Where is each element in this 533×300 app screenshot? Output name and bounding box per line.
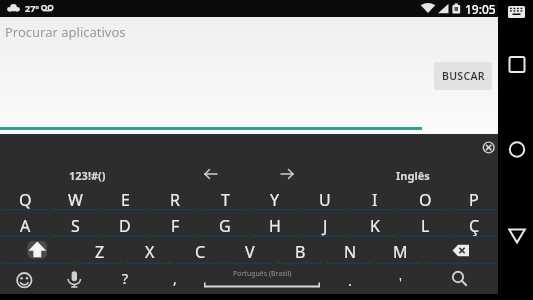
staticText: 123!#() [69, 168, 106, 183]
staticText: 27° [25, 2, 40, 14]
staticText: Inglês [396, 168, 430, 183]
button[interactable]: H [250, 213, 300, 239]
staticText: Português (Brasil) [233, 269, 292, 279]
button[interactable]: Z [75, 239, 125, 265]
button[interactable]: N [325, 239, 375, 265]
button[interactable]: F [150, 213, 200, 239]
button[interactable]: Q [0, 187, 50, 213]
staticText: M [393, 241, 408, 263]
staticText: A [20, 215, 31, 237]
button[interactable] [0, 265, 50, 292]
button[interactable]: E [100, 187, 150, 213]
button[interactable]: ' [375, 265, 425, 292]
staticText: S [71, 215, 80, 237]
button[interactable]: Inglês [380, 162, 445, 188]
staticText: G [219, 215, 231, 237]
button[interactable]: ? [100, 265, 150, 292]
staticText: Procurar aplicativos [5, 23, 126, 41]
button[interactable] [498, 132, 533, 167]
button[interactable]: Ç [450, 213, 498, 239]
staticText: ' [399, 273, 402, 291]
button[interactable] [425, 239, 498, 265]
staticText: ? [122, 269, 129, 288]
button[interactable]: D [100, 213, 150, 239]
button[interactable] [425, 265, 498, 292]
staticText: R [170, 189, 180, 211]
staticText: BUSCAR [442, 69, 485, 83]
button[interactable]: C [175, 239, 225, 265]
button[interactable]: L [400, 213, 450, 239]
staticText: H [269, 215, 281, 237]
staticText: T [221, 189, 230, 211]
button[interactable]: S [50, 213, 100, 239]
button[interactable]: V [225, 239, 275, 265]
button[interactable]: J [300, 213, 350, 239]
staticText: P [469, 189, 479, 211]
button[interactable] [498, 0, 533, 28]
button[interactable]: T [200, 187, 250, 213]
staticText: U [319, 189, 331, 211]
button[interactable]: U [300, 187, 350, 213]
button[interactable]: A [0, 213, 50, 239]
staticText: F [171, 215, 180, 237]
button[interactable]: I [350, 187, 400, 213]
button[interactable]: . [325, 265, 375, 292]
staticText: X [145, 241, 155, 263]
staticText: I [372, 189, 378, 211]
staticText: , [173, 269, 177, 288]
staticText: Q [19, 189, 32, 211]
button[interactable]: BUSCAR [434, 62, 492, 90]
button[interactable]: Y [250, 187, 300, 213]
staticText: C [195, 241, 206, 263]
staticText: N [344, 241, 357, 263]
staticText: J [323, 215, 328, 237]
staticText: K [370, 215, 380, 237]
button[interactable] [498, 47, 533, 82]
button[interactable]: O [400, 187, 450, 213]
button[interactable]: K [350, 213, 400, 239]
staticText: 19:05 [465, 1, 496, 17]
staticText: D [119, 215, 131, 237]
button[interactable]: G [200, 213, 250, 239]
staticText: L [421, 215, 430, 237]
button[interactable] [50, 265, 100, 292]
button[interactable]: 123!#() [55, 162, 120, 188]
staticText: B [295, 241, 306, 263]
staticText: . [348, 271, 352, 290]
button[interactable]: M [375, 239, 425, 265]
button[interactable] [0, 239, 75, 265]
staticText: Ç [469, 215, 480, 237]
staticText: W [68, 189, 83, 211]
staticText: Z [95, 241, 105, 263]
button[interactable]: R [150, 187, 200, 213]
button[interactable]: W [50, 187, 100, 213]
staticText: O [419, 189, 432, 211]
button[interactable]: X [125, 239, 175, 265]
button[interactable]: B [275, 239, 325, 265]
button[interactable]: , [150, 265, 200, 292]
button[interactable] [498, 218, 533, 253]
button[interactable]: Português (Brasil) [200, 265, 325, 292]
staticText: E [121, 189, 130, 211]
button[interactable]: P [450, 187, 498, 213]
staticText: Y [270, 189, 280, 211]
staticText: V [245, 241, 255, 263]
